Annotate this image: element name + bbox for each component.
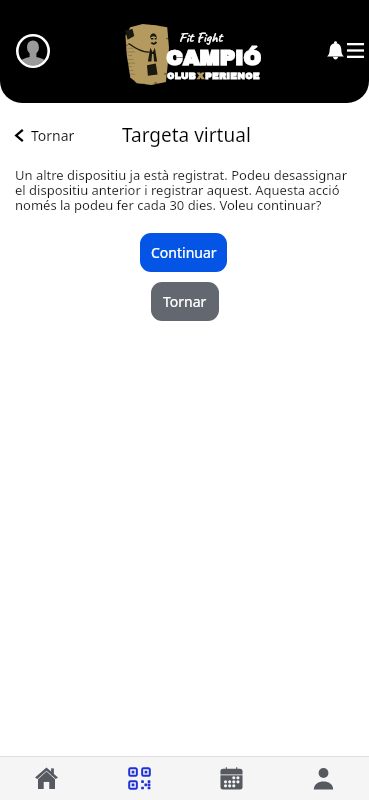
staticText: PERIENCE xyxy=(205,71,260,81)
button[interactable]: Profile xyxy=(277,757,369,800)
button[interactable]: Tornar xyxy=(14,126,75,145)
staticText: Un altre dispositiu ja està registrat. P… xyxy=(15,166,351,214)
staticText: Tornar xyxy=(31,126,75,145)
staticText: CLUB xyxy=(167,71,197,81)
button[interactable]: Tornar xyxy=(151,282,219,321)
button[interactable]: Notifications xyxy=(325,40,346,61)
staticText: X xyxy=(197,71,205,81)
button[interactable]: QR code xyxy=(93,757,185,800)
button[interactable]: Home xyxy=(0,757,93,800)
button[interactable]: Profile xyxy=(16,34,50,68)
staticText: CAMPIÓ xyxy=(166,47,262,70)
staticText: Tornar xyxy=(163,292,207,311)
button[interactable]: Calendar xyxy=(185,757,277,800)
staticText: Fit Fight xyxy=(179,29,223,47)
button[interactable]: Menu xyxy=(347,43,364,58)
button[interactable]: Continuar xyxy=(140,233,227,272)
staticText: Continuar xyxy=(151,243,217,262)
staticText: Targeta virtual xyxy=(122,122,251,148)
